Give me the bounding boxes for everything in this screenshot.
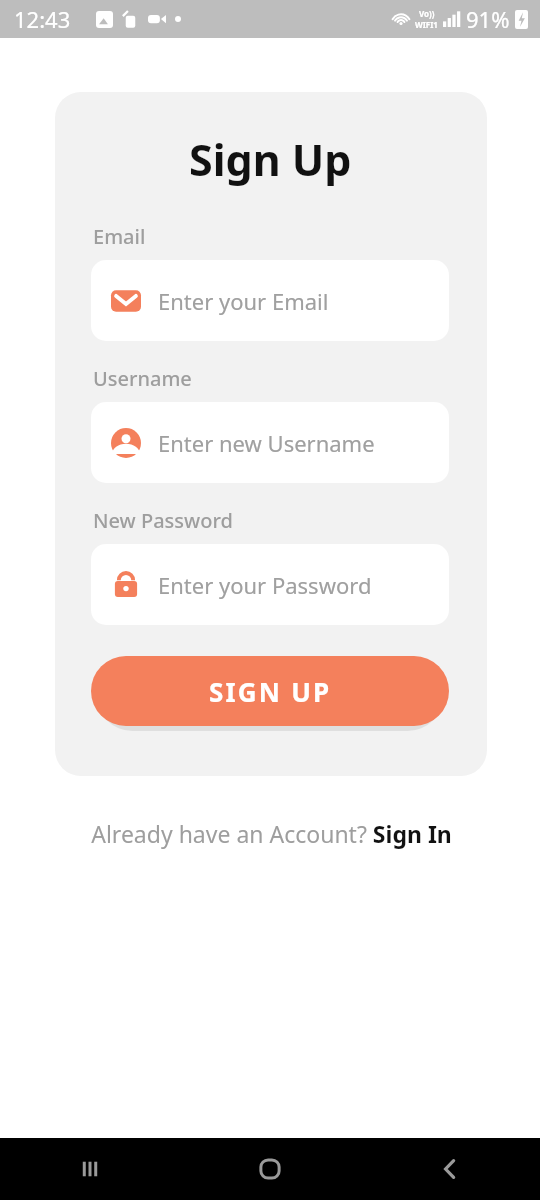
staticText: New Password — [93, 507, 233, 534]
staticText: Enter your Email — [158, 286, 329, 316]
button[interactable]: Enter new Username — [91, 402, 449, 483]
staticText: Already have an Account? Sign In — [91, 818, 452, 849]
button[interactable]: Recent apps — [0, 1138, 180, 1200]
staticText: Username — [93, 365, 192, 392]
staticText: Sign Up — [189, 130, 352, 189]
button[interactable]: Back — [360, 1138, 540, 1200]
staticText: Enter your Password — [158, 570, 372, 600]
staticText: SIGN UP — [209, 674, 332, 709]
button[interactable]: Enter your Email — [91, 260, 449, 341]
button[interactable]: Home — [180, 1138, 360, 1200]
staticText: Email — [93, 223, 146, 250]
button[interactable]: Already have an Account? Sign In — [55, 818, 487, 849]
staticText: 12:43 — [14, 4, 71, 34]
staticText: WIFI1 — [415, 19, 438, 30]
staticText: 91% — [466, 4, 510, 34]
button[interactable]: Enter your Password — [91, 544, 449, 625]
staticText: Vo)) — [419, 8, 435, 19]
button[interactable]: SIGN UP — [91, 656, 449, 726]
staticText: Enter new Username — [158, 428, 375, 458]
